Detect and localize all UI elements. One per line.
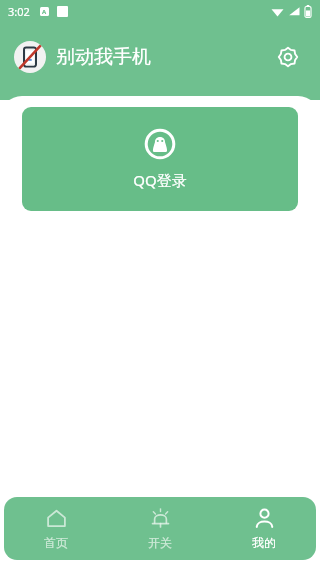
button[interactable]: 开关 — [108, 497, 212, 560]
staticText: 首页 — [44, 535, 68, 550]
button[interactable]: Settings — [268, 37, 308, 77]
staticText: 我的 — [252, 535, 276, 550]
staticText: 开关 — [148, 535, 172, 550]
staticText: 别动我手机 — [56, 45, 151, 69]
staticText: A — [42, 8, 47, 16]
button[interactable]: 我的 — [212, 497, 316, 560]
staticText: 3:02 — [8, 4, 30, 19]
button[interactable]: 首页 — [4, 497, 108, 560]
staticText: QQ登录 — [133, 170, 187, 190]
button[interactable]: QQ登录 — [22, 107, 298, 211]
